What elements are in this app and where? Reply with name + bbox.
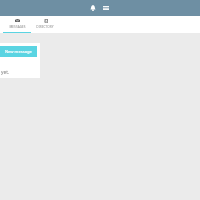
- button[interactable]: New message: [0, 46, 37, 57]
- button[interactable]: MESSAGES: [3, 16, 31, 33]
- button[interactable]: DIRECTORY: [31, 16, 59, 33]
- button[interactable]: Notifications: [87, 2, 99, 14]
- staticText: DIRECTORY: [36, 25, 54, 29]
- staticText: yet.: [1, 69, 10, 76]
- staticText: New message: [5, 49, 32, 55]
- staticText: MESSAGES: [9, 25, 26, 29]
- button[interactable]: Messages: [100, 2, 112, 14]
